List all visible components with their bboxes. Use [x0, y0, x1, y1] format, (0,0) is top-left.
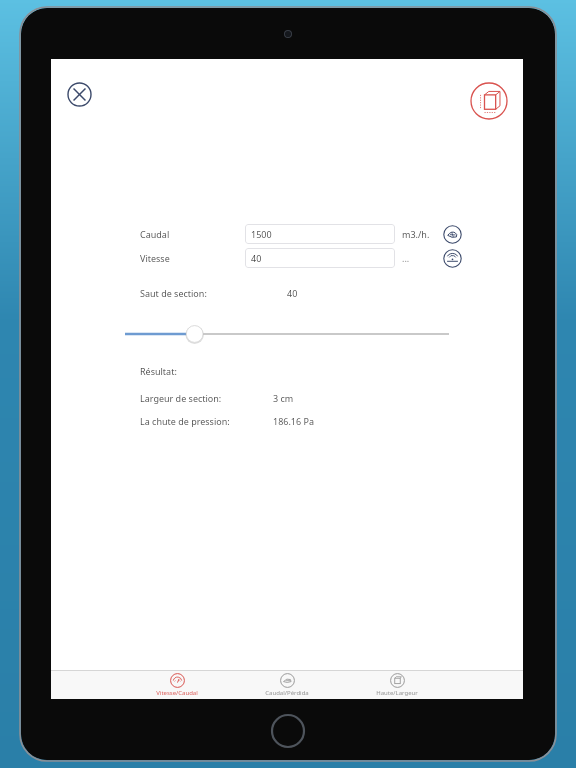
staticText: 40	[251, 252, 262, 264]
button[interactable]: Vitesse/Caudal	[135, 671, 219, 699]
staticText: Caudal	[140, 228, 170, 240]
staticText: Vitesse	[140, 252, 170, 264]
staticText: Vitesse/Caudal	[156, 689, 198, 697]
staticText: ...	[402, 252, 410, 264]
staticText: Caudal/Pérdida	[265, 689, 309, 697]
staticText: 3 cm	[273, 392, 294, 404]
staticText: Haute/Largeur	[376, 689, 418, 697]
staticText: La chute de pression:	[140, 415, 230, 427]
staticText: Résultat:	[140, 365, 177, 377]
staticText: m3./h.	[402, 228, 430, 240]
button[interactable]: Flow info	[441, 223, 463, 245]
button[interactable]: 1500	[245, 224, 395, 244]
button[interactable]: Caudal/Pérdida	[245, 671, 329, 699]
button[interactable]: Haute/Largeur	[355, 671, 439, 699]
staticText: Saut de section:	[140, 287, 207, 299]
button[interactable]: 40	[245, 248, 395, 268]
button[interactable]: Velocity info	[441, 247, 463, 269]
staticText: 1500	[251, 228, 272, 240]
button[interactable]: Section slider	[121, 322, 453, 346]
staticText: 186.16 Pa	[273, 415, 314, 427]
staticText: Largeur de section:	[140, 392, 222, 404]
button[interactable]: App logo	[468, 80, 510, 122]
staticText: 40	[287, 287, 298, 299]
button[interactable]: Close	[62, 77, 96, 111]
